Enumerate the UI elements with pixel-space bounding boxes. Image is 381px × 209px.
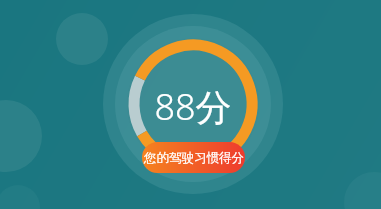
staticText: 88分: [154, 82, 232, 126]
staticText: 您的驾驶习惯得分: [144, 150, 244, 166]
button[interactable]: 您的驾驶习惯得分: [142, 142, 245, 173]
